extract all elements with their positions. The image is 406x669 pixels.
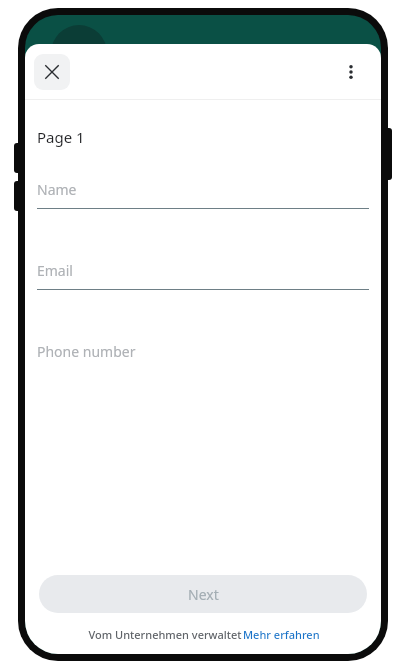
staticText: Vom Unternehmen verwaltet <box>87 627 243 642</box>
staticText: Name <box>37 180 77 199</box>
staticText: Mehr erfahren <box>243 627 320 642</box>
staticText: Next <box>188 585 219 604</box>
button[interactable]: Mehr erfahren <box>243 627 320 642</box>
staticText: Phone number <box>37 342 136 361</box>
button[interactable]: More options <box>331 52 371 92</box>
button[interactable]: Next <box>39 575 367 613</box>
staticText: Page 1 <box>37 127 85 147</box>
button[interactable]: Phone number <box>37 342 369 370</box>
button[interactable]: Close <box>34 54 70 90</box>
button[interactable]: Name <box>37 180 369 209</box>
staticText: Email <box>37 261 73 280</box>
button[interactable]: Email <box>37 261 369 290</box>
